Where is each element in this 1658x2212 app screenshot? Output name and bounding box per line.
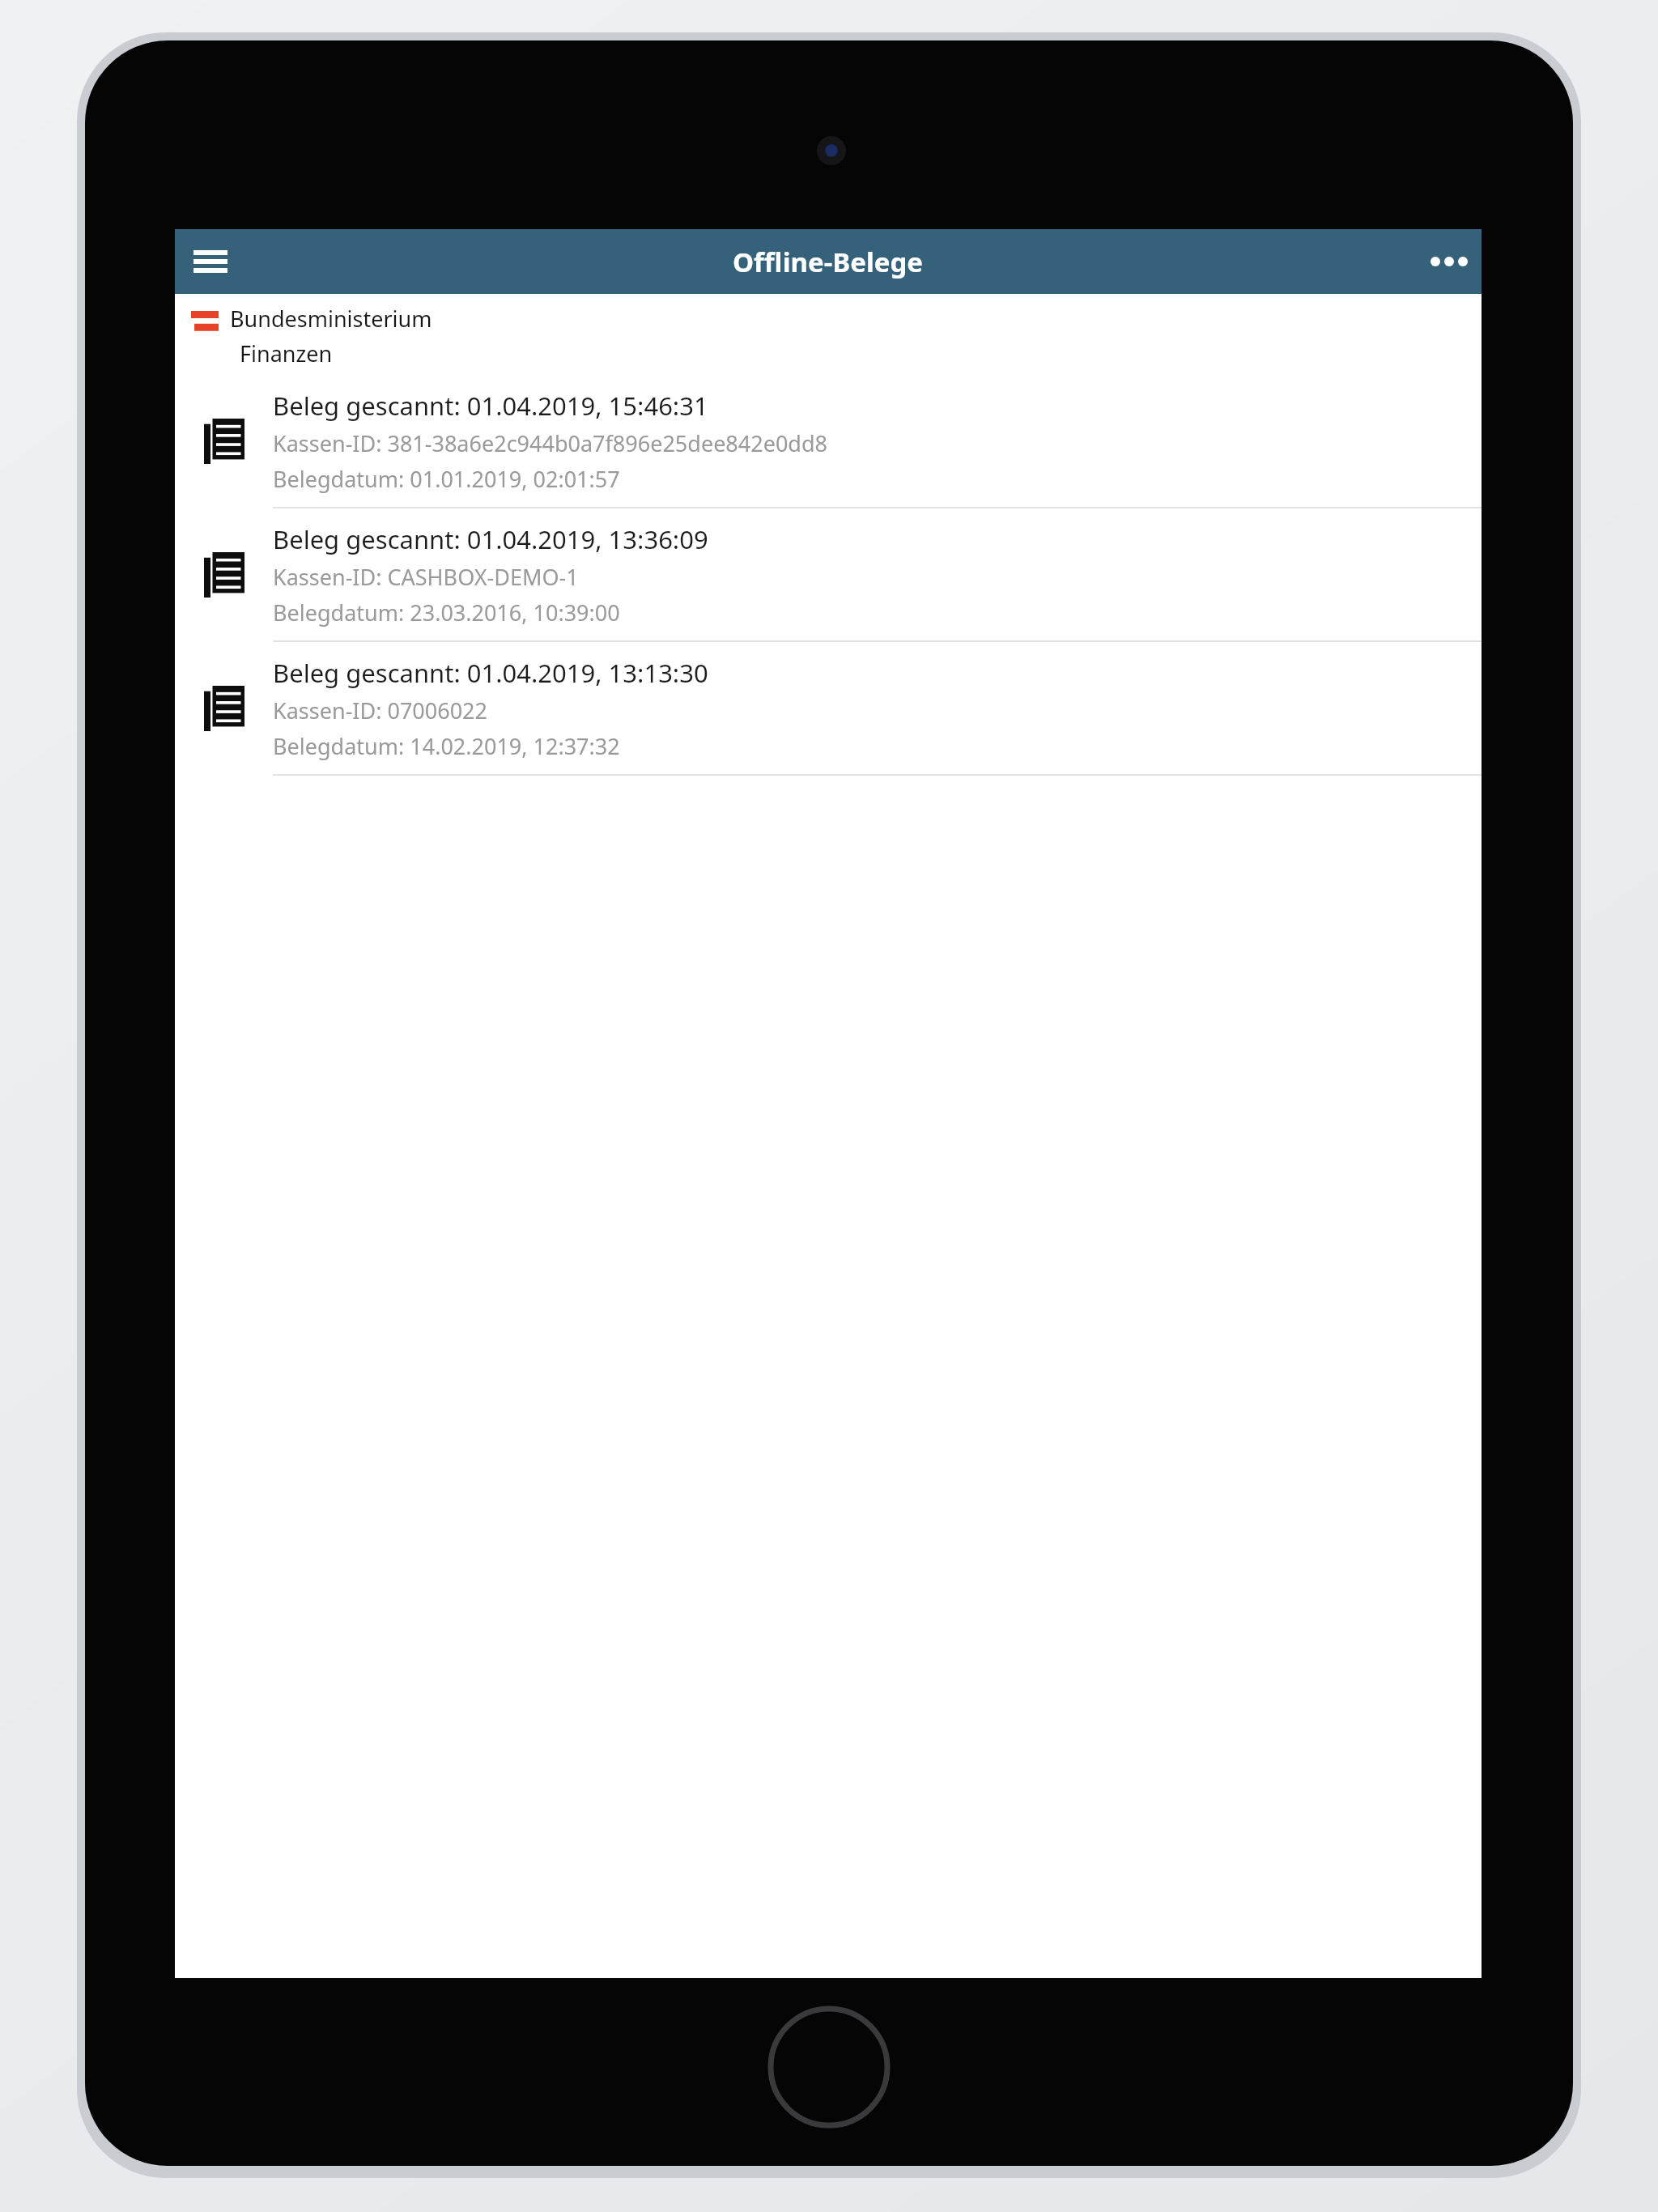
staticText: Belegdatum: 23.03.2016, 10:39:00 [273, 598, 620, 627]
staticText: Beleg gescannt: 01.04.2019, 15:46:31 [273, 389, 708, 423]
staticText: Beleg gescannt: 01.04.2019, 13:13:30 [273, 656, 708, 690]
button[interactable]: Beleg gescannt: 01.04.2019, 15:46:31 [175, 375, 1482, 508]
button[interactable]: Beleg gescannt: 01.04.2019, 13:36:09 [175, 508, 1482, 642]
staticText: Kassen-ID: CASHBOX-DEMO-1 [273, 562, 579, 592]
staticText: Beleg gescannt: 01.04.2019, 13:36:09 [273, 522, 708, 556]
staticText: Kassen-ID: 381-38a6e2c944b0a7f896e25dee8… [273, 428, 828, 458]
staticText: Bundesministerium [230, 304, 432, 334]
button[interactable]: Beleg gescannt: 01.04.2019, 13:13:30 [175, 642, 1482, 776]
staticText: Offline-Belege [733, 244, 924, 280]
staticText: Belegdatum: 14.02.2019, 12:37:32 [273, 731, 620, 761]
staticText: Kassen-ID: 07006022 [273, 696, 488, 725]
button[interactable]: Menu [181, 232, 240, 291]
staticText: Finanzen [240, 338, 333, 368]
staticText: Belegdatum: 01.01.2019, 02:01:57 [273, 464, 620, 494]
button[interactable]: More options [1420, 232, 1478, 291]
